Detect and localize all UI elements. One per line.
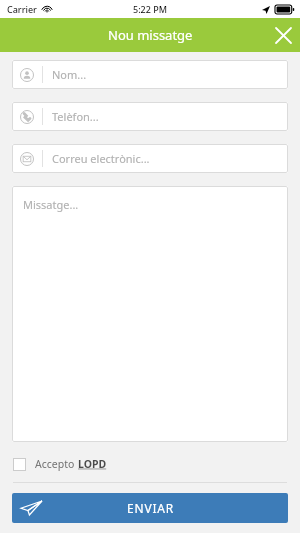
staticText: Missatge...	[23, 197, 79, 212]
button[interactable]: Nom...	[12, 60, 288, 89]
staticText: LOPD	[78, 457, 107, 471]
button[interactable]: ENVIAR	[12, 493, 288, 523]
staticText: Nom...	[52, 67, 87, 82]
button[interactable]: Accepto	[13, 454, 107, 474]
button[interactable]: Missatge...	[12, 186, 288, 442]
staticText: Accepto	[35, 457, 78, 471]
button[interactable]: Close	[266, 18, 300, 52]
staticText: Correu electrònic...	[52, 151, 150, 166]
button[interactable]: Telèfon...	[12, 102, 288, 131]
staticText: ENVIAR	[127, 500, 174, 516]
staticText: Telèfon...	[52, 109, 99, 124]
staticText: Carrier	[7, 3, 37, 15]
staticText: 5:22 PM	[133, 3, 167, 15]
button[interactable]: Correu electrònic...	[12, 144, 288, 173]
staticText: Nou missatge	[108, 26, 193, 44]
